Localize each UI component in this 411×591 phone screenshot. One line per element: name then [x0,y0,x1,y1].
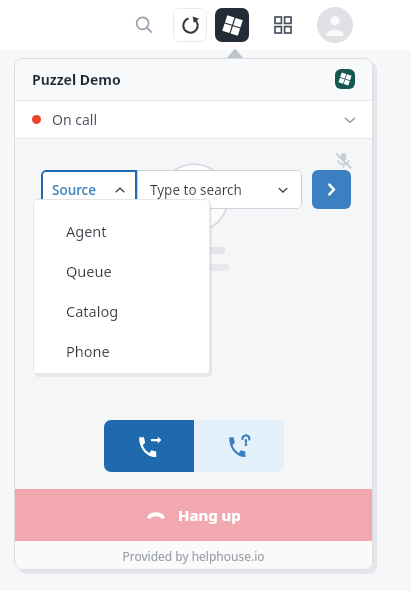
staticText: Type to search [150,181,242,199]
staticText: Phone [66,341,110,361]
staticText: Source [52,181,96,199]
staticText: Catalog [66,301,119,321]
staticText: Hang up [178,505,241,525]
button[interactable]: Hang up [14,489,373,541]
button[interactable]: On call [14,101,373,138]
button[interactable]: Type to search [137,170,302,209]
button[interactable]: Source [41,170,137,209]
button[interactable]: Mute microphone [330,147,356,173]
staticText: On call [52,110,98,129]
button[interactable]: Puzzel extension [215,8,249,42]
staticText: Agent [66,221,107,241]
staticText: Puzzel Demo [32,70,121,89]
button[interactable]: Consult call [194,420,284,472]
button[interactable]: Apps [266,8,300,42]
staticText: Queue [66,261,112,281]
button[interactable]: Go [312,170,351,209]
button[interactable]: Reload [173,8,207,42]
button[interactable]: Phone [33,331,210,371]
button[interactable]: Catalog [33,291,210,331]
button[interactable]: Queue [33,251,210,291]
button[interactable]: Transfer call [104,420,194,472]
button[interactable]: Search [127,8,161,42]
button[interactable]: Puzzel logo [335,69,355,89]
button[interactable]: Agent [33,211,210,251]
button[interactable]: Profile [317,7,353,43]
staticText: Provided by helphouse.io [122,548,265,564]
